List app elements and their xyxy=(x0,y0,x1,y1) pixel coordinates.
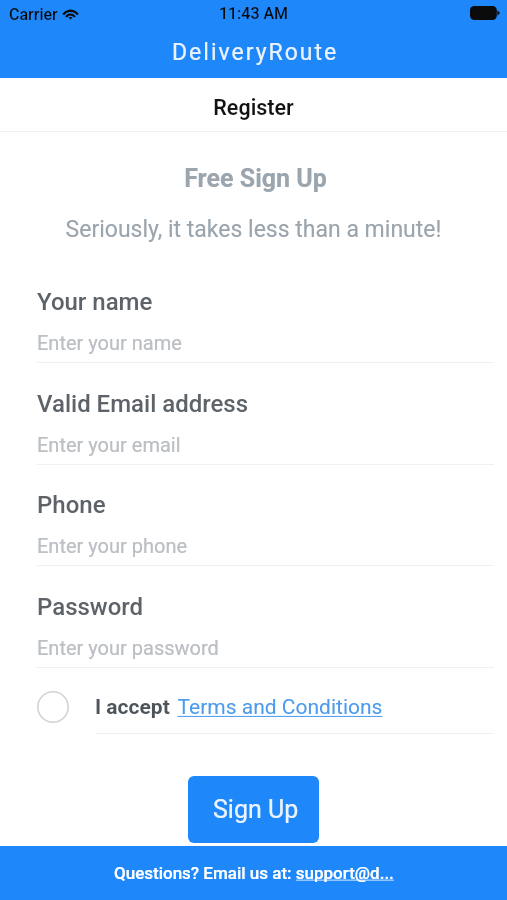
button[interactable]: DeliveryRoute xyxy=(172,39,339,66)
staticText: Seriously, it takes less than a minute! xyxy=(0,216,507,243)
staticText: Carrier xyxy=(9,5,58,24)
staticText: Enter your name xyxy=(37,331,182,354)
staticText: Password xyxy=(37,593,144,621)
button[interactable]: Sign Up xyxy=(188,776,319,843)
button[interactable]: Password xyxy=(37,593,494,668)
staticText: Enter your phone xyxy=(37,534,188,557)
button[interactable]: Your name xyxy=(37,288,494,363)
staticText: 11:43 AM xyxy=(0,4,507,23)
staticText: Questions? Email us at: support@d... xyxy=(114,863,394,883)
staticText: Enter your email xyxy=(37,433,181,456)
staticText: Register xyxy=(0,95,507,120)
other: Battery xyxy=(470,6,500,20)
staticText: Enter your password xyxy=(37,636,219,659)
button[interactable]: Questions? Email us at: support@d... xyxy=(0,846,507,900)
staticText: Sign Up xyxy=(213,795,299,824)
staticText: I accept Terms and Conditions xyxy=(95,695,383,720)
other: Wi-Fi xyxy=(61,6,80,20)
staticText: Phone xyxy=(37,491,106,519)
button[interactable]: Valid Email address xyxy=(37,390,494,465)
staticText: Your name xyxy=(37,288,153,316)
button[interactable]: Phone xyxy=(37,491,494,566)
staticText: Valid Email address xyxy=(37,390,249,418)
button[interactable]: Accept terms xyxy=(37,691,494,723)
other: Accept terms xyxy=(37,691,69,723)
staticText: Free Sign Up xyxy=(2,164,507,193)
